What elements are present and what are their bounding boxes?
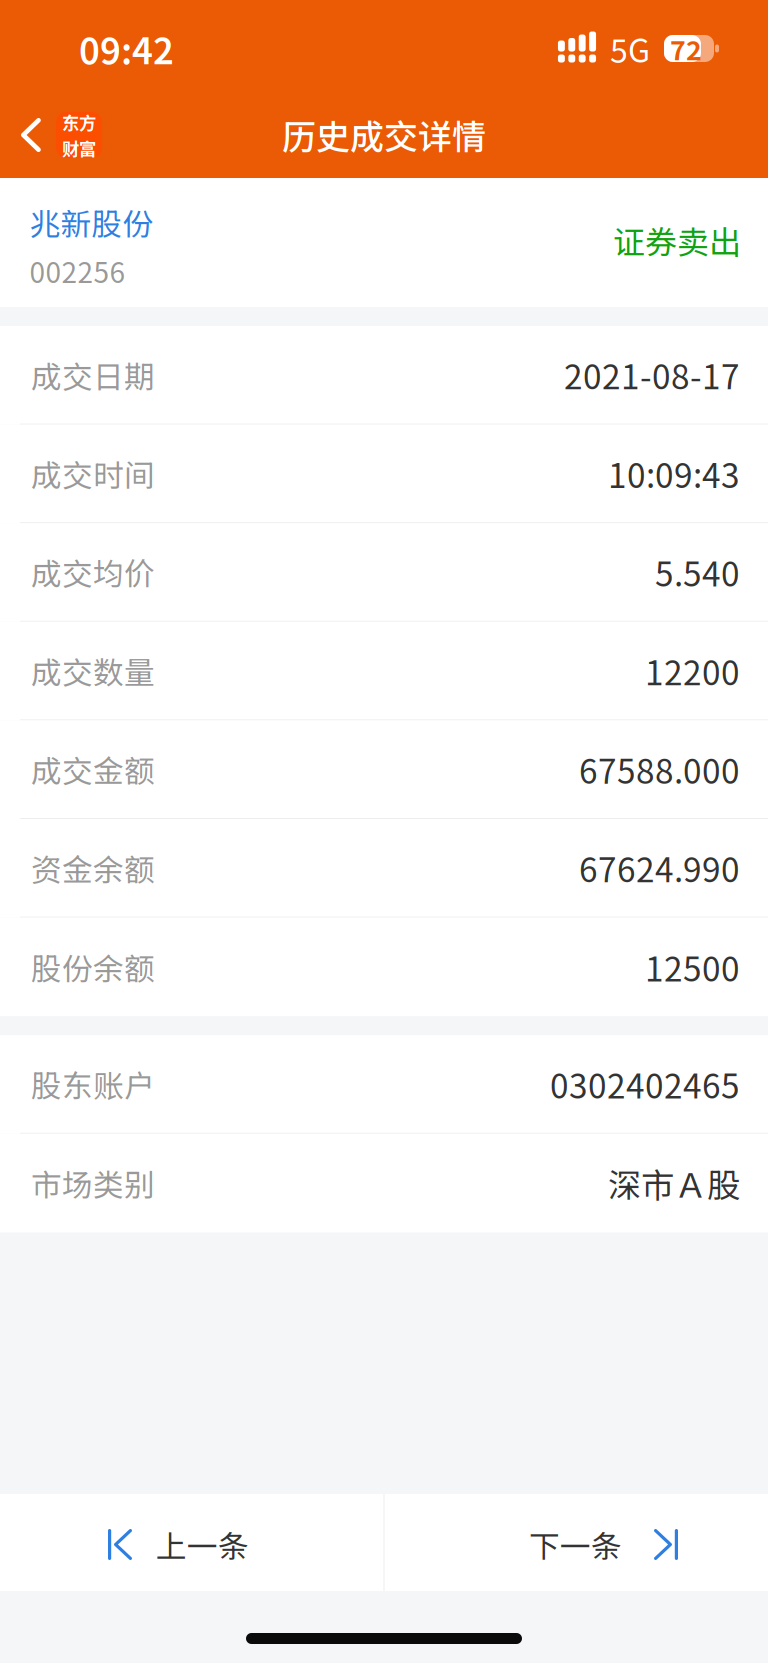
staticText: 0302402465 xyxy=(550,1060,740,1108)
staticText: 深市Ａ股 xyxy=(608,1159,740,1207)
staticText: 历史成交详情 xyxy=(282,110,486,159)
staticText: 成交日期 xyxy=(31,353,155,397)
staticText: 12500 xyxy=(645,943,740,991)
staticText: 成交时间 xyxy=(31,451,155,496)
staticText: 5G xyxy=(610,25,650,72)
staticText: 兆新股份 xyxy=(29,200,153,244)
staticText: 72 xyxy=(670,29,702,68)
staticText: 成交金额 xyxy=(31,747,155,791)
staticText: 67624.990 xyxy=(579,844,740,892)
staticText: 股东账户 xyxy=(31,1062,155,1106)
staticText: 下一条 xyxy=(529,1522,622,1567)
staticText: 成交均价 xyxy=(31,550,155,594)
staticText: 10:09:43 xyxy=(608,449,740,498)
button[interactable]: 上一条 xyxy=(0,1494,383,1591)
staticText: 2021-08-17 xyxy=(564,351,740,399)
staticText: 股份余额 xyxy=(31,945,155,989)
staticText: 上一条 xyxy=(156,1522,249,1567)
staticText: 12200 xyxy=(645,646,740,695)
staticText: 67588.000 xyxy=(579,745,740,793)
staticText: 资金余额 xyxy=(31,846,155,890)
staticText: 002256 xyxy=(29,250,125,291)
staticText: 市场类别 xyxy=(31,1161,155,1205)
staticText: 09:42 xyxy=(79,22,174,74)
staticText: 5.540 xyxy=(655,548,740,596)
staticText: 财富 xyxy=(62,135,96,161)
button[interactable]: 返回 xyxy=(0,97,114,178)
staticText: 证券卖出 xyxy=(613,217,741,263)
staticText: 东方 xyxy=(62,109,96,134)
staticText: 成交数量 xyxy=(31,648,155,693)
button[interactable]: 下一条 xyxy=(384,1494,768,1591)
